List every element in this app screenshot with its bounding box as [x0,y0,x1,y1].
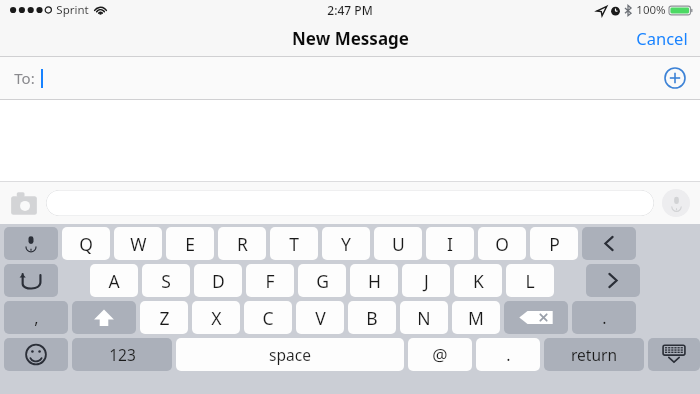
button[interactable]: T [270,227,318,260]
staticText: P [549,232,560,256]
staticText: V [315,306,326,330]
staticText: , [34,307,39,329]
button[interactable]: S [142,264,190,297]
staticText: S [161,269,171,293]
staticText: M [468,306,484,330]
button[interactable]: Y [322,227,370,260]
button[interactable]: B [348,301,396,334]
button[interactable]: K [454,264,502,297]
button[interactable]: G [298,264,346,297]
staticText: D [212,269,225,293]
button[interactable]: H [350,264,398,297]
button[interactable]: , [4,301,68,334]
staticText: F [265,269,275,293]
button[interactable]: space [176,338,404,371]
staticText: Z [159,306,170,330]
staticText: C [262,306,274,330]
button[interactable]: Emoji [4,338,68,371]
button[interactable]: Camera [10,189,38,217]
staticText: Sprint [56,2,89,18]
button[interactable]: Dictation [4,227,58,260]
button[interactable]: V [296,301,344,334]
button[interactable]: 123 [72,338,172,371]
staticText: G [316,269,329,293]
staticText: T [289,232,299,256]
button[interactable]: @ [408,338,472,371]
button[interactable]: Previous [582,227,636,260]
button[interactable]: X [192,301,240,334]
staticText: To: [14,68,35,88]
staticText: I [447,232,453,256]
button[interactable]: E [166,227,214,260]
staticText: space [269,344,311,365]
button[interactable]: O [478,227,526,260]
button[interactable]: U [374,227,422,260]
button[interactable]: L [506,264,554,297]
button[interactable]: C [244,301,292,334]
staticText: Q [79,232,93,256]
staticText: K [473,269,484,293]
button[interactable]: R [218,227,266,260]
staticText: Y [341,232,351,256]
button[interactable]: Next [586,264,640,297]
button[interactable]: Undo [4,264,58,297]
button[interactable]: Shift [72,301,136,334]
staticText: N [417,306,431,330]
staticText: . [602,307,607,329]
button[interactable]: return [544,338,644,371]
staticText: L [525,269,535,293]
button[interactable]: P [530,227,578,260]
button[interactable] [46,190,654,216]
staticText: @ [432,343,448,366]
staticText: return [571,344,617,365]
button[interactable]: N [400,301,448,334]
staticText: J [424,269,429,293]
button[interactable]: W [114,227,162,260]
button[interactable]: J [402,264,450,297]
staticText: . [506,344,511,366]
staticText: R [237,232,248,256]
button[interactable]: D [194,264,242,297]
button[interactable]: Dictate [662,189,690,217]
button[interactable]: Hide keyboard [648,338,700,371]
button[interactable]: A [90,264,138,297]
staticText: 100% [636,2,666,18]
button[interactable]: Delete [504,301,568,334]
staticText: B [366,306,378,330]
staticText: X [211,306,222,330]
staticText: U [392,232,405,256]
staticText: E [185,232,195,256]
staticText: O [495,232,509,256]
button[interactable]: Add contact [664,67,686,89]
staticText: 2:47 PM [327,2,373,18]
staticText: A [108,269,120,293]
button[interactable]: I [426,227,474,260]
staticText: 123 [109,344,136,365]
staticText: H [368,269,381,293]
staticText: W [130,232,147,256]
button[interactable]: M [452,301,500,334]
staticText: Cancel [636,27,688,49]
button[interactable]: . [476,338,540,371]
button[interactable]: Q [62,227,110,260]
button[interactable]: Z [140,301,188,334]
button[interactable]: F [246,264,294,297]
staticText: New Message [292,27,409,50]
button[interactable]: Cancel [636,27,688,49]
button[interactable]: . [572,301,636,334]
